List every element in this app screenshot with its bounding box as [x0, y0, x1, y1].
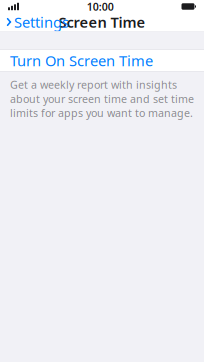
button[interactable]: Turn On Screen Time — [0, 50, 204, 71]
staticText: Get a weekly report with insights about … — [10, 77, 194, 120]
staticText: Settings — [14, 12, 69, 32]
staticText: Screen Time — [58, 12, 145, 32]
button[interactable]: Settings — [0, 9, 69, 35]
staticText: 10:00 — [87, 0, 114, 14]
staticText: Turn On Screen Time — [10, 51, 153, 70]
